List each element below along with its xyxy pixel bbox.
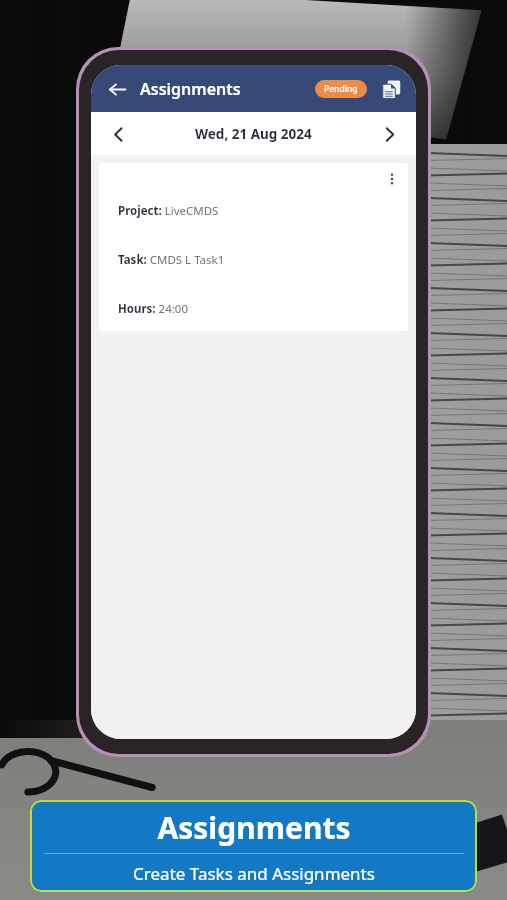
button[interactable]: Documents [377,75,405,103]
button[interactable]: Assignments [30,800,477,892]
button[interactable]: More options [380,167,404,191]
button[interactable]: Next day [374,119,404,149]
staticText: Assignments [157,807,351,848]
staticText: Project: LiveCMDS [118,203,219,219]
staticText: Task: CMDS L Task1 [118,252,225,268]
staticText: Pending [324,83,358,95]
staticText: Assignments [140,78,241,100]
button[interactable]: Back [102,74,132,104]
staticText: Hours: 24:00 [118,301,188,317]
staticText: Wed, 21 Aug 2024 [195,125,312,143]
button[interactable]: Previous day [103,119,133,149]
button[interactable]: More options [99,163,408,331]
staticText: Create Tasks and Assignments [133,862,375,885]
button[interactable]: Pending [315,80,367,98]
